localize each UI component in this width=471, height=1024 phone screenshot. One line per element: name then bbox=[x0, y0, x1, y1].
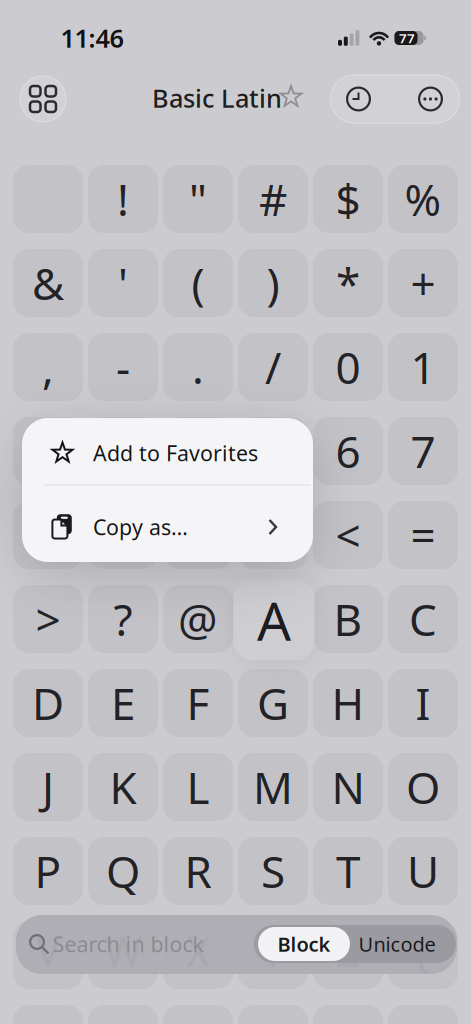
staticText: , bbox=[42, 338, 54, 396]
button[interactable] bbox=[410, 79, 450, 119]
staticText: Q bbox=[106, 842, 140, 900]
staticText: ; bbox=[267, 506, 279, 564]
staticText: # bbox=[259, 170, 287, 228]
button[interactable]: H bbox=[313, 669, 383, 737]
button[interactable]: = bbox=[388, 501, 458, 569]
button[interactable]: F bbox=[163, 669, 233, 737]
button[interactable]: B bbox=[313, 585, 383, 653]
button[interactable]: X bbox=[163, 921, 233, 989]
staticText: M bbox=[253, 758, 293, 816]
button[interactable]: N bbox=[313, 753, 383, 821]
staticText: 4 bbox=[185, 422, 210, 480]
staticText: - bbox=[116, 338, 130, 396]
button[interactable]: " bbox=[163, 165, 233, 233]
button[interactable]: V bbox=[13, 921, 83, 989]
button[interactable]: < bbox=[313, 501, 383, 569]
button[interactable]: ? bbox=[88, 585, 158, 653]
button[interactable]: ' bbox=[88, 249, 158, 317]
button[interactable] bbox=[338, 79, 378, 119]
button[interactable]: 9 bbox=[88, 501, 158, 569]
button[interactable]: ) bbox=[238, 249, 308, 317]
button[interactable]: $ bbox=[313, 165, 383, 233]
button[interactable]: * bbox=[313, 249, 383, 317]
button[interactable]: ( bbox=[163, 249, 233, 317]
staticText: ' bbox=[118, 254, 128, 312]
button[interactable]: Q bbox=[88, 837, 158, 905]
staticText: 0 bbox=[335, 338, 360, 396]
button[interactable]: Copy as… bbox=[22, 485, 313, 562]
button[interactable]: @ bbox=[163, 585, 233, 653]
button[interactable]: 3 bbox=[88, 417, 158, 485]
staticText: Block bbox=[277, 931, 330, 957]
staticText: L bbox=[186, 758, 209, 816]
button[interactable]: R bbox=[163, 837, 233, 905]
button[interactable]: Add to Favorites bbox=[22, 418, 313, 485]
button[interactable] bbox=[16, 915, 457, 974]
staticText: W bbox=[104, 924, 141, 977]
staticText: 6 bbox=[335, 422, 360, 480]
button[interactable]: T bbox=[313, 837, 383, 905]
button[interactable] bbox=[279, 86, 302, 108]
button[interactable]: 1 bbox=[388, 333, 458, 401]
button[interactable]: , bbox=[13, 333, 83, 401]
button[interactable]: S bbox=[238, 837, 308, 905]
button[interactable]: I bbox=[388, 669, 458, 737]
button[interactable]: . bbox=[163, 333, 233, 401]
button[interactable]: 7 bbox=[388, 417, 458, 485]
button[interactable] bbox=[254, 925, 456, 963]
button[interactable]: P bbox=[13, 837, 83, 905]
staticText: : bbox=[192, 506, 204, 564]
button[interactable]: 4 bbox=[163, 417, 233, 485]
button[interactable]: # bbox=[238, 165, 308, 233]
button[interactable]: M bbox=[238, 753, 308, 821]
button[interactable]: J bbox=[13, 753, 83, 821]
button[interactable]: 2 bbox=[13, 417, 83, 485]
button[interactable]: / bbox=[238, 333, 308, 401]
button[interactable]: Unicode bbox=[352, 927, 442, 961]
button[interactable]: D bbox=[13, 669, 83, 737]
button[interactable]: - bbox=[88, 333, 158, 401]
button[interactable]: O bbox=[388, 753, 458, 821]
staticText: / bbox=[265, 338, 281, 396]
button[interactable]: 0 bbox=[313, 333, 383, 401]
staticText: * bbox=[336, 254, 360, 312]
button[interactable]: Z bbox=[313, 921, 383, 989]
staticText: @ bbox=[178, 590, 218, 648]
button[interactable]: % bbox=[388, 165, 458, 233]
staticText: . bbox=[192, 338, 204, 396]
button[interactable]: 5 bbox=[238, 417, 308, 485]
button[interactable]: 6 bbox=[313, 417, 383, 485]
button[interactable]: + bbox=[388, 249, 458, 317]
button[interactable]: Y bbox=[238, 921, 308, 989]
button[interactable]: E bbox=[88, 669, 158, 737]
staticText: " bbox=[189, 170, 207, 228]
button[interactable]: U bbox=[388, 837, 458, 905]
button[interactable]: A bbox=[233, 579, 314, 660]
staticText: B bbox=[333, 590, 362, 648]
button[interactable]: W bbox=[88, 921, 158, 989]
button[interactable]: 8 bbox=[13, 501, 83, 569]
button[interactable]: [ bbox=[388, 921, 458, 989]
staticText: 7 bbox=[410, 422, 435, 480]
staticText: ( bbox=[191, 254, 204, 312]
button[interactable]: & bbox=[13, 249, 83, 317]
button[interactable]: Block bbox=[258, 927, 350, 961]
button[interactable]: : bbox=[163, 501, 233, 569]
button[interactable]: > bbox=[13, 585, 83, 653]
button[interactable]: L bbox=[163, 753, 233, 821]
button[interactable]: G bbox=[238, 669, 308, 737]
staticText: K bbox=[109, 758, 136, 816]
button[interactable]: ! bbox=[88, 165, 158, 233]
button[interactable]: K bbox=[88, 753, 158, 821]
button[interactable]: ; bbox=[238, 501, 308, 569]
staticText: E bbox=[111, 674, 135, 732]
button[interactable]: C bbox=[388, 585, 458, 653]
button[interactable] bbox=[19, 75, 66, 122]
